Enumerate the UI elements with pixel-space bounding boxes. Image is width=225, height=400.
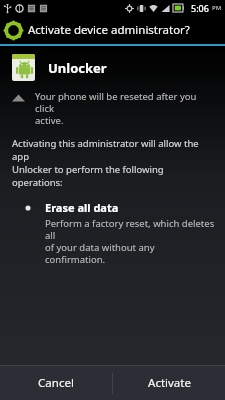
button[interactable]: Collapse warning <box>12 90 215 127</box>
staticText: PM <box>212 4 222 12</box>
button[interactable]: Cancel <box>0 366 112 400</box>
staticText: Your phone will be reseted after you cli… <box>35 90 215 127</box>
staticText: Activate <box>148 375 191 391</box>
button[interactable]: Activate <box>113 366 225 400</box>
staticText: Activate device administrator? <box>28 22 190 38</box>
staticText: 5:06 <box>191 2 209 14</box>
staticText: Unlocker <box>48 59 107 77</box>
staticText: Activating this administrator will allow… <box>12 137 215 189</box>
staticText: Cancel <box>38 375 74 391</box>
staticText: Perform a factory reset, which deletes a… <box>45 217 215 266</box>
staticText: Erase all data <box>45 200 119 215</box>
